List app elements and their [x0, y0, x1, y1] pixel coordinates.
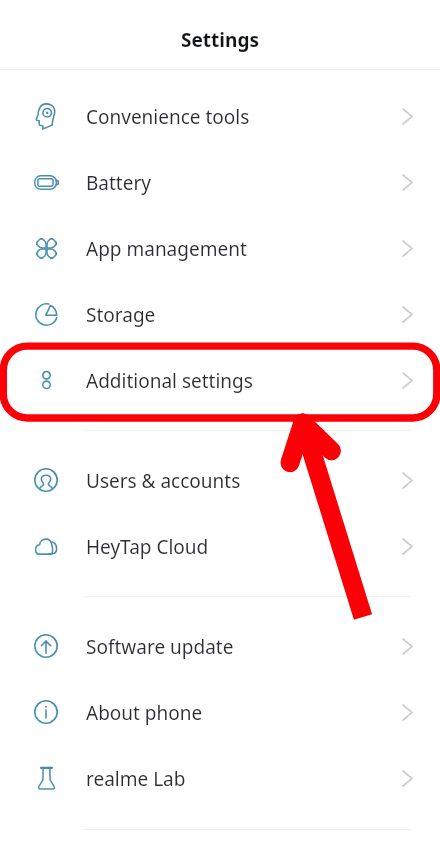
button[interactable]: App management — [0, 215, 440, 281]
staticText: Additional settings — [86, 368, 253, 394]
button[interactable]: Convenience tools — [0, 83, 440, 149]
staticText: About phone — [86, 700, 203, 726]
button[interactable]: Software update — [0, 613, 440, 679]
staticText: Settings — [181, 27, 259, 53]
other: Highlight annotation — [0, 0, 440, 864]
staticText: Software update — [86, 634, 234, 660]
staticText: Convenience tools — [86, 104, 250, 130]
button[interactable]: Users & accounts — [0, 447, 440, 513]
button[interactable]: realme Lab — [0, 745, 440, 811]
staticText: Storage — [86, 302, 156, 328]
button[interactable]: Battery — [0, 149, 440, 215]
staticText: Users & accounts — [86, 468, 241, 494]
staticText: Battery — [86, 170, 151, 196]
staticText: App management — [86, 236, 247, 262]
staticText: realme Lab — [86, 766, 186, 792]
button[interactable]: Storage — [0, 281, 440, 347]
button[interactable]: Additional settings — [0, 347, 440, 413]
button[interactable]: About phone — [0, 679, 440, 745]
staticText: HeyTap Cloud — [86, 534, 209, 560]
button[interactable]: HeyTap Cloud — [0, 513, 440, 579]
